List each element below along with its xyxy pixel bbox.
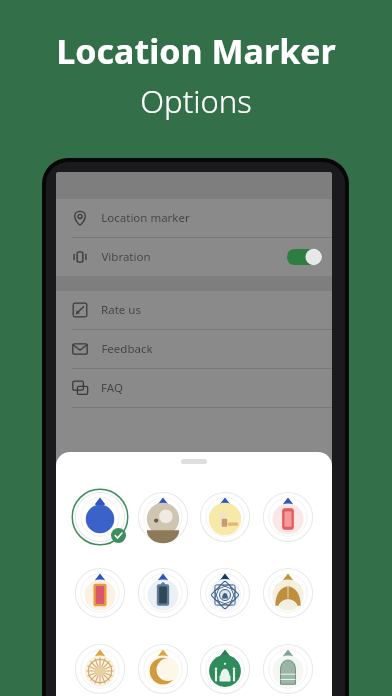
- button[interactable]: Marker style 8: [261, 566, 315, 620]
- staticText: Options: [140, 80, 252, 122]
- button[interactable]: Marker style 1: [73, 490, 127, 544]
- button[interactable]: Marker style 10: [136, 642, 190, 696]
- button[interactable]: Marker style 5: [73, 566, 127, 620]
- staticText: Location Marker: [56, 28, 336, 74]
- button[interactable]: FAQ: [56, 369, 332, 407]
- button[interactable]: Marker style 7: [198, 566, 252, 620]
- button[interactable]: Marker style 11: [198, 642, 252, 696]
- staticText: Vibration: [101, 249, 151, 265]
- button[interactable]: Rate us: [56, 291, 332, 329]
- button[interactable]: Marker style 9: [73, 642, 127, 696]
- button[interactable]: Marker style 2: [136, 490, 190, 544]
- button[interactable]: Marker style 6: [136, 566, 190, 620]
- button[interactable]: Vibration toggle: [287, 248, 322, 266]
- button[interactable]: Marker style 12: [261, 642, 315, 696]
- button[interactable]: Feedback: [56, 330, 332, 368]
- staticText: FAQ: [101, 380, 123, 396]
- button[interactable]: Vibration: [56, 238, 332, 276]
- button[interactable]: Location marker: [56, 199, 332, 237]
- staticText: Feedback: [101, 341, 153, 357]
- button[interactable]: Marker style 4: [261, 490, 315, 544]
- staticText: Location marker: [101, 210, 190, 226]
- staticText: Rate us: [101, 302, 141, 318]
- button[interactable]: Marker style 3: [198, 490, 252, 544]
